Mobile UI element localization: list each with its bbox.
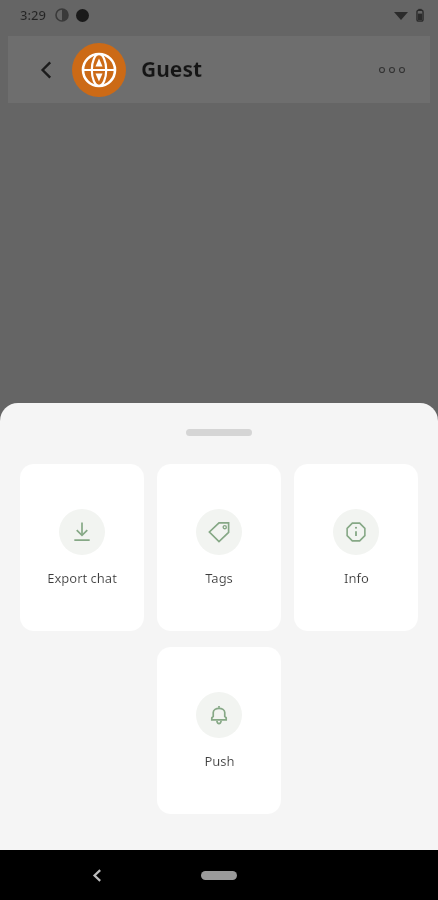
button[interactable]: Back: [80, 858, 114, 892]
button[interactable]: Back: [30, 53, 64, 87]
button[interactable]: Export chat: [20, 464, 144, 631]
staticText: Guest: [141, 55, 203, 84]
staticText: Tags: [205, 569, 233, 587]
button[interactable]: Tags: [157, 464, 281, 631]
button[interactable]: Home: [189, 858, 249, 892]
button[interactable]: Info: [294, 464, 418, 631]
staticText: Info: [344, 569, 369, 587]
button[interactable]: Avatar: [72, 43, 126, 97]
staticText: Export chat: [47, 569, 117, 587]
button[interactable]: Push: [157, 647, 281, 814]
staticText: Push: [204, 752, 235, 770]
staticText: 3:29: [20, 6, 46, 24]
button[interactable]: More options: [372, 50, 412, 90]
